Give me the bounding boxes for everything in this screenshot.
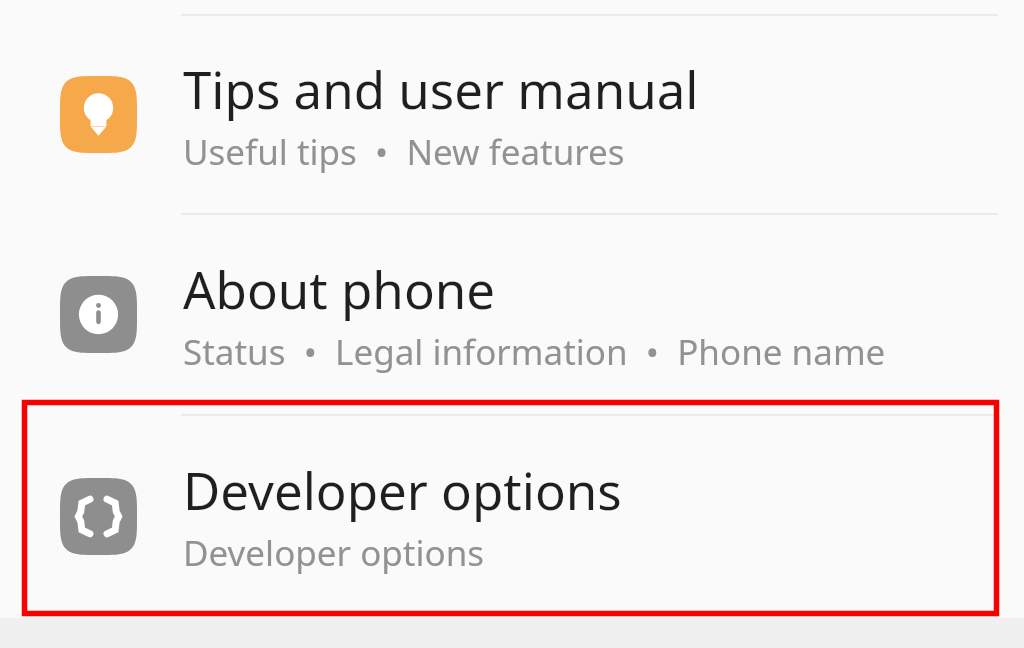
button[interactable]: About phone: [0, 215, 1024, 414]
staticText: Useful tips • New features: [183, 128, 625, 176]
staticText: Developer options: [183, 529, 485, 577]
other: About phone: [60, 276, 137, 353]
other: Developer options: [60, 478, 137, 555]
button[interactable]: Developer options: [0, 416, 1024, 616]
other: Tips and user manual: [60, 76, 137, 153]
staticText: About phone: [183, 254, 496, 323]
staticText: Tips and user manual: [183, 54, 699, 123]
button[interactable]: Tips and user manual: [0, 16, 1024, 213]
staticText: Developer options: [183, 455, 622, 524]
staticText: Status • Legal information • Phone name: [183, 328, 886, 376]
